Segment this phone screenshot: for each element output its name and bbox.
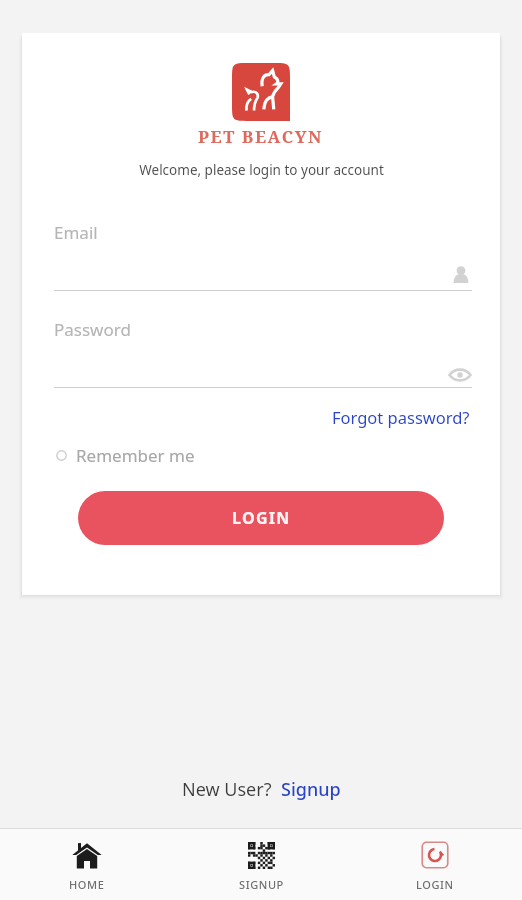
other: Signup [248,842,275,869]
other: Login [420,840,450,870]
button[interactable]: Email [54,221,472,291]
button[interactable]: LOGIN [78,491,444,545]
staticText: New User? [182,777,272,802]
staticText: LOGIN [232,507,291,529]
button[interactable]: Forgot password? [328,402,474,432]
other: Home [72,842,102,869]
button[interactable]: Signup [281,777,341,802]
button[interactable]: Login [348,829,522,900]
staticText: PET BEACYN [198,125,324,148]
button[interactable]: Remember me [54,440,197,471]
staticText: Password [54,318,131,341]
button[interactable]: Home [0,829,174,900]
staticText: Forgot password? [332,406,470,428]
staticText: SIGNUP [239,877,284,892]
button[interactable]: Password [54,318,472,388]
staticText: Signup [281,777,341,802]
staticText: HOME [69,877,105,892]
staticText: LOGIN [416,877,454,892]
staticText: Welcome, please login to your account [139,161,384,179]
staticText: Remember me [76,444,195,467]
staticText: Email [54,221,98,244]
button[interactable]: Signup [174,829,348,900]
